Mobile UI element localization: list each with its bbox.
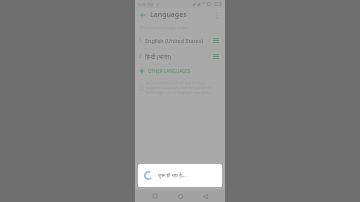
button[interactable]: Home <box>175 191 185 201</box>
staticText: Apps and websites will use the first lan… <box>146 80 221 85</box>
button[interactable]: 2 <box>135 48 225 64</box>
staticText: OTHER LANGUAGES <box>148 68 191 74</box>
other: Reorder हिन्दी (भारत) <box>211 52 220 61</box>
staticText: support. Languages that carry both the c… <box>146 85 221 90</box>
button[interactable]: OTHER LANGUAGES <box>135 64 225 78</box>
other: Loading <box>143 170 154 181</box>
button[interactable]: 1 <box>135 32 225 48</box>
button[interactable]: Loading <box>138 164 222 187</box>
staticText: 2 <box>139 53 142 59</box>
other: Reorder English (United States) <box>211 36 220 45</box>
staticText: English (United States) <box>145 37 203 44</box>
button[interactable]: Navigate up <box>138 10 148 20</box>
staticText: at the right of the language text will b… <box>146 90 221 95</box>
staticText: Languages <box>150 10 187 20</box>
button[interactable]: Recent apps <box>150 191 160 201</box>
staticText: 6:06 PM <box>138 2 154 7</box>
staticText: हिन्दी (भारत) <box>145 53 171 60</box>
staticText: Preferred language order <box>140 25 188 30</box>
staticText: शुरू हो रहा है… <box>158 172 186 179</box>
staticText: 1 <box>139 37 142 43</box>
button[interactable]: Back <box>200 191 210 201</box>
